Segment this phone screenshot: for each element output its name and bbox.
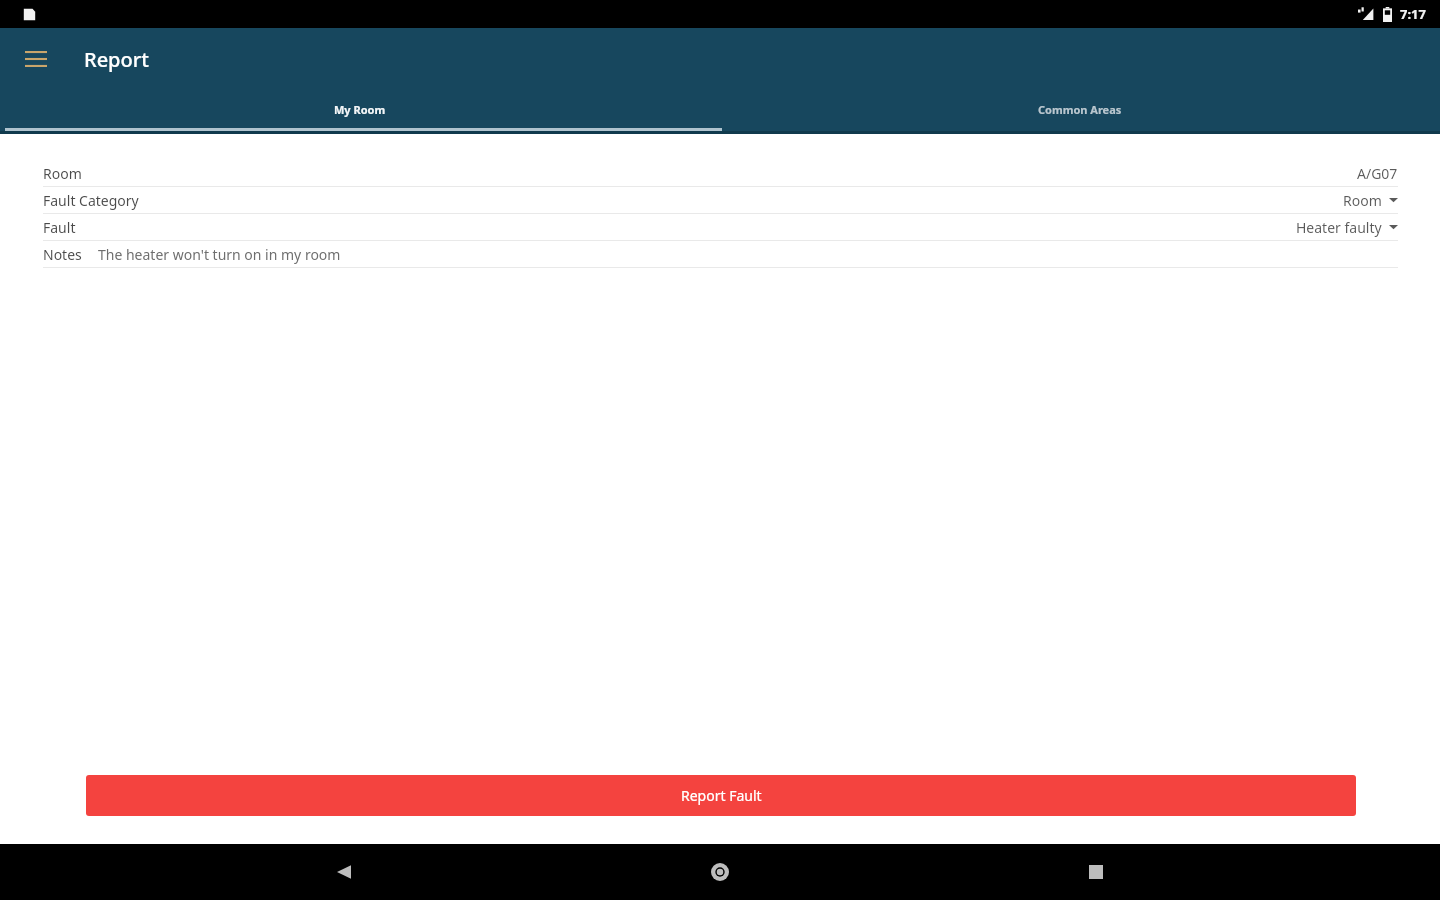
- button[interactable]: Back: [312, 844, 376, 900]
- staticText: Heater faulty: [1296, 218, 1382, 237]
- button[interactable]: Fault Category: [43, 187, 1398, 213]
- staticText: A/G07: [1357, 164, 1398, 183]
- staticText: Report Fault: [681, 786, 762, 805]
- staticText: Room: [1343, 191, 1382, 210]
- button[interactable]: Notes: [43, 241, 1398, 267]
- staticText: Report: [84, 46, 149, 73]
- staticText: Notes: [43, 245, 82, 264]
- staticText: Fault: [43, 218, 76, 237]
- button[interactable]: Home: [688, 844, 752, 900]
- staticText: The heater won't turn on in my room: [98, 245, 341, 264]
- button[interactable]: Recent apps: [1064, 844, 1128, 900]
- staticText: 7:17: [1400, 5, 1426, 23]
- button[interactable]: Room: [43, 160, 1398, 186]
- button[interactable]: Common Areas: [720, 90, 1440, 128]
- button[interactable]: My Room: [0, 90, 720, 128]
- staticText: My Room: [334, 102, 386, 117]
- button[interactable]: Fault: [43, 214, 1398, 240]
- button[interactable]: Open navigation menu: [12, 35, 60, 83]
- staticText: Fault Category: [43, 191, 139, 210]
- staticText: Common Areas: [1038, 102, 1122, 117]
- button[interactable]: Report Fault: [86, 775, 1356, 816]
- staticText: Room: [43, 164, 82, 183]
